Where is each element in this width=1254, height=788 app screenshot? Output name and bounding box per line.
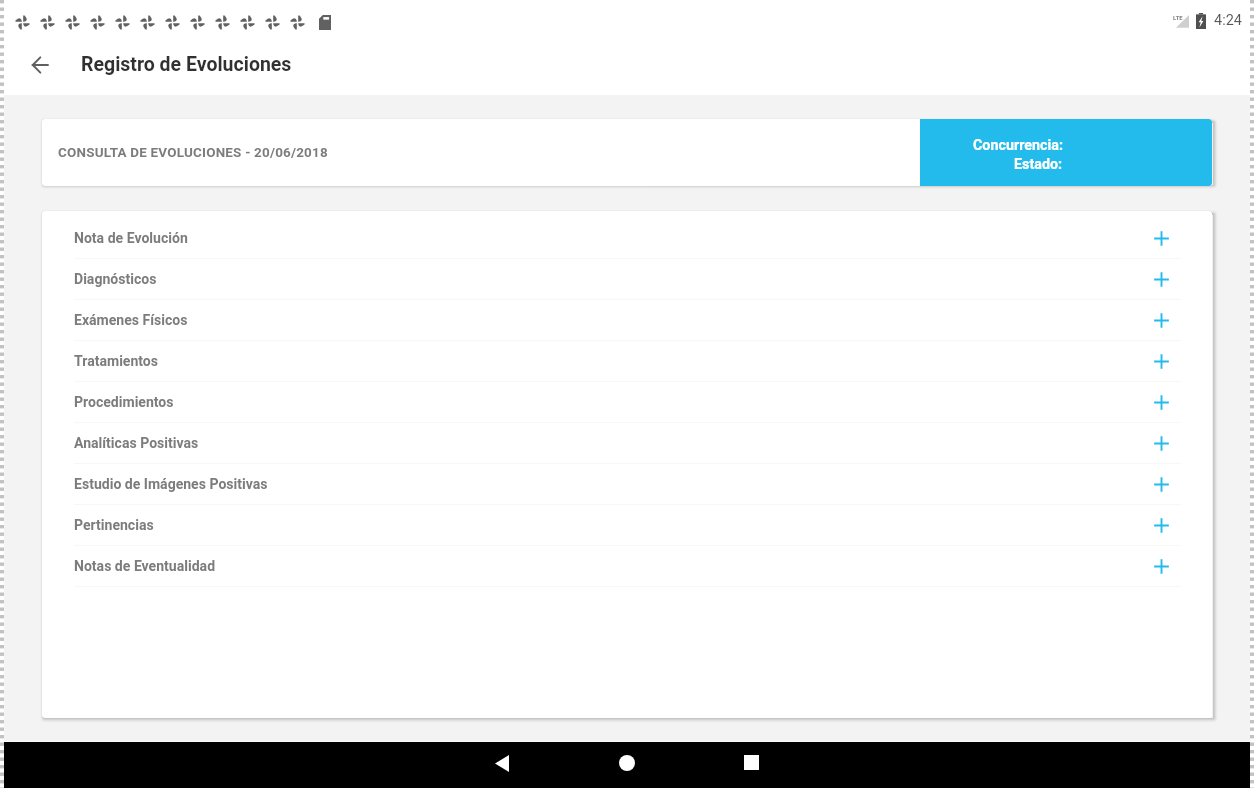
button[interactable]: Agregar Procedimientos: [1146, 387, 1176, 417]
button[interactable]: Agregar Nota de Evolución: [1146, 223, 1176, 253]
button[interactable]: Analíticas Positivas: [74, 423, 1181, 463]
button[interactable]: Tratamientos: [74, 341, 1181, 381]
staticText: Estudio de Imágenes Positivas: [74, 476, 268, 492]
button[interactable]: Atrás: [487, 750, 517, 776]
button[interactable]: Procedimientos: [74, 382, 1181, 422]
staticText: LTE: [1173, 14, 1183, 21]
button[interactable]: Agregar Diagnósticos: [1146, 264, 1176, 294]
button[interactable]: Recientes: [736, 749, 766, 775]
button[interactable]: Concurrencia:: [920, 119, 1212, 186]
staticText: Diagnósticos: [74, 271, 157, 287]
staticText: Estado:: [1014, 156, 1063, 173]
button[interactable]: Estudio de Imágenes Positivas: [74, 464, 1181, 504]
button[interactable]: Agregar Analíticas Positivas: [1146, 428, 1176, 458]
staticText: Notas de Eventualidad: [74, 558, 216, 574]
staticText: 4:24: [1214, 12, 1242, 29]
button[interactable]: Diagnósticos: [74, 259, 1181, 299]
button[interactable]: Notas de Eventualidad: [74, 546, 1181, 586]
button[interactable]: Agregar Tratamientos: [1146, 346, 1176, 376]
staticText: Tratamientos: [74, 353, 159, 369]
staticText: Nota de Evolución: [74, 230, 188, 246]
button[interactable]: Inicio: [612, 750, 642, 776]
button[interactable]: Agregar Exámenes Físicos: [1146, 305, 1176, 335]
button[interactable]: Agregar Notas de Eventualidad: [1146, 551, 1176, 581]
button[interactable]: Agregar Estudio de Imágenes Positivas: [1146, 469, 1176, 499]
button[interactable]: Exámenes Físicos: [74, 300, 1181, 340]
staticText: Concurrencia:: [973, 137, 1063, 154]
staticText: Procedimientos: [74, 394, 174, 410]
staticText: Analíticas Positivas: [74, 435, 199, 451]
button[interactable]: Agregar Pertinencias: [1146, 510, 1176, 540]
staticText: Pertinencias: [74, 517, 154, 533]
staticText: CONSULTA DE EVOLUCIONES - 20/06/2018: [58, 145, 328, 161]
staticText: Exámenes Físicos: [74, 312, 188, 328]
button[interactable]: Pertinencias: [74, 505, 1181, 545]
button[interactable]: Atrás: [22, 47, 58, 83]
button[interactable]: Nota de Evolución: [74, 218, 1181, 258]
staticText: Registro de Evoluciones: [81, 53, 292, 76]
